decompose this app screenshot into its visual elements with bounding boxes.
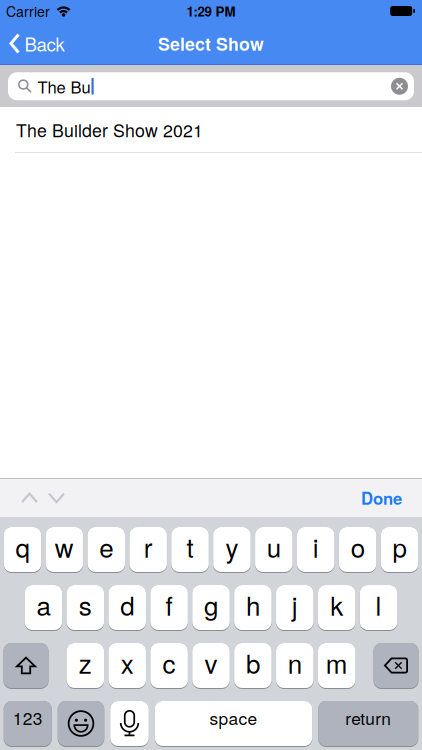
button[interactable]: f [150, 585, 188, 631]
button[interactable] [373, 643, 418, 689]
button[interactable]: t [171, 527, 209, 573]
button[interactable]: z [67, 643, 104, 689]
button[interactable]: h [234, 585, 272, 631]
staticText: e [99, 528, 113, 565]
staticText: The Builder Show 2021 [16, 117, 203, 142]
button[interactable]: Done [361, 486, 402, 510]
button[interactable]: l [360, 585, 397, 631]
staticText: i [313, 528, 319, 565]
staticText: w [55, 528, 74, 565]
button[interactable] [21, 492, 38, 504]
button[interactable]: s [67, 585, 104, 631]
button[interactable]: e [87, 527, 125, 573]
button[interactable]: x [108, 643, 146, 689]
button[interactable]: m [318, 643, 355, 689]
staticText: u [267, 528, 281, 565]
staticText: g [204, 586, 218, 623]
staticText: r [144, 528, 153, 565]
staticText: z [79, 644, 92, 681]
staticText: q [15, 528, 29, 565]
button[interactable] [110, 701, 149, 747]
staticText: b [246, 644, 260, 681]
staticText: The Bu [37, 74, 90, 98]
button[interactable]: The Builder Show 2021 [0, 107, 422, 153]
staticText: p [392, 528, 406, 565]
staticText: Done [361, 486, 402, 510]
staticText: m [326, 644, 348, 681]
button[interactable]: n [276, 643, 314, 689]
button[interactable]: r [129, 527, 167, 573]
staticText: return [345, 705, 391, 730]
staticText: y [225, 528, 238, 565]
staticText: d [120, 586, 134, 623]
staticText: n [288, 644, 302, 681]
button[interactable]: u [255, 527, 293, 573]
staticText: 1:29 PM [186, 1, 235, 21]
staticText: a [36, 586, 50, 623]
staticText: o [351, 528, 365, 565]
button[interactable]: Back [9, 30, 64, 57]
staticText: space [209, 705, 257, 730]
button[interactable]: The Bu [0, 64, 422, 100]
staticText: l [376, 586, 382, 623]
staticText: v [204, 644, 217, 681]
staticText: Back [24, 30, 64, 57]
button[interactable]: g [192, 585, 230, 631]
button[interactable]: k [318, 585, 355, 631]
button[interactable]: o [339, 527, 376, 573]
staticText: 123 [13, 705, 43, 730]
staticText: j [292, 586, 298, 623]
button[interactable]: y [213, 527, 251, 573]
button[interactable]: c [150, 643, 188, 689]
staticText: f [166, 586, 173, 623]
button[interactable]: a [25, 585, 62, 631]
button[interactable]: p [381, 527, 418, 573]
staticText: c [163, 644, 176, 681]
button[interactable]: d [108, 585, 146, 631]
button[interactable] [48, 492, 65, 504]
staticText: t [186, 528, 193, 565]
button[interactable] [58, 701, 104, 747]
button[interactable]: w [46, 527, 83, 573]
button[interactable]: j [276, 585, 314, 631]
staticText: Carrier [6, 1, 50, 21]
staticText: x [121, 644, 134, 681]
staticText: s [79, 586, 92, 623]
staticText: Select Show [158, 31, 264, 56]
staticText: k [330, 586, 343, 623]
button[interactable]: return [318, 701, 418, 747]
button[interactable]: b [234, 643, 272, 689]
staticText: h [246, 586, 260, 623]
button[interactable]: v [192, 643, 230, 689]
button[interactable] [3, 643, 48, 689]
button[interactable]: 123 [4, 701, 52, 747]
button[interactable]: q [4, 527, 41, 573]
button[interactable]: i [297, 527, 334, 573]
button[interactable]: space [155, 701, 312, 747]
button[interactable] [391, 78, 414, 95]
